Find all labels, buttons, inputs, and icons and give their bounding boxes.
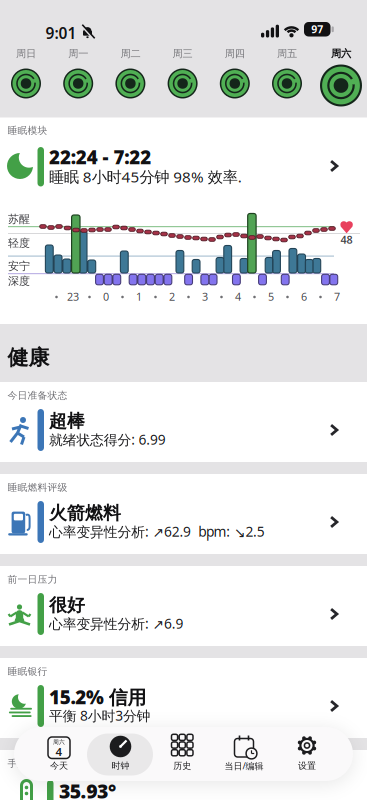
staticText: 48 [340, 231, 352, 248]
button[interactable]: 当日/编辑 [0, 0, 367, 800]
button[interactable]: 超棒 [0, 0, 367, 800]
staticText: 6 [301, 288, 307, 305]
staticText: 当日/编辑 [224, 758, 263, 773]
staticText: 手腕温度 [7, 756, 47, 771]
button[interactable]: 周四 [0, 0, 367, 800]
staticText: 周五 [277, 46, 297, 61]
staticText: 前一日压力 [7, 572, 57, 587]
staticText: 3 [202, 288, 208, 305]
staticText: 睡眠模块 [7, 123, 47, 138]
staticText: 7 [334, 288, 340, 305]
staticText: 22:24 - 7:22 [49, 142, 151, 172]
button[interactable]: 时钟 [0, 0, 367, 800]
staticText: 超棒 [49, 408, 85, 434]
staticText: 4 [55, 742, 62, 761]
staticText: 睡眠燃料评级 [7, 480, 67, 495]
staticText: 9:01 [45, 20, 76, 45]
button[interactable]: 周六 [0, 0, 367, 800]
staticText: 0 [103, 288, 109, 305]
staticText: 4 [235, 288, 241, 305]
staticText: 周四 [225, 46, 245, 61]
staticText: 97 [311, 21, 323, 38]
staticText: 深度 [8, 273, 30, 289]
staticText: 5 [268, 288, 274, 305]
staticText: 苏醒 [8, 211, 30, 227]
button[interactable]: 周二 [0, 0, 367, 800]
staticText: 睡眠银行 [7, 664, 47, 679]
staticText: 很好 [49, 592, 85, 618]
button[interactable]: 周日 [0, 0, 367, 800]
button[interactable]: 很好 [0, 0, 367, 800]
staticText: 设置 [298, 759, 316, 773]
staticText: 2 [169, 288, 175, 305]
staticText: 周二 [120, 46, 140, 61]
button[interactable]: 周六 [0, 0, 367, 800]
staticText: 周六 [53, 738, 65, 746]
button[interactable]: 22:24 - 7:22 [0, 0, 367, 800]
staticText: 心率变异性分析: ↗62.9 bpm: ↘2.5 [49, 520, 265, 543]
staticText: 时钟 [111, 759, 129, 773]
button[interactable]: 周一 [0, 0, 367, 800]
button[interactable]: 火箭燃料 [0, 0, 367, 800]
button[interactable]: 周三 [0, 0, 367, 800]
button[interactable]: 15.2% 信用 [0, 0, 367, 800]
staticText: 火箭燃料 [49, 500, 121, 526]
staticText: 35.93° [59, 775, 116, 800]
staticText: 1 [136, 288, 142, 305]
staticText: 今天 [50, 759, 68, 773]
staticText: 轻度 [8, 235, 30, 251]
staticText: 心率变异性分析: ↗6.9 [49, 612, 183, 635]
button[interactable]: 设置 [0, 0, 367, 800]
staticText: 就绪状态得分: 6.99 [49, 428, 166, 451]
staticText: 周六 [331, 46, 351, 61]
staticText: 23 [67, 288, 79, 305]
staticText: 今日准备状态 [7, 388, 67, 403]
staticText: 15.2% 信用 [49, 682, 146, 712]
staticText: 健康 [7, 342, 49, 373]
button[interactable]: 周五 [0, 0, 367, 800]
staticText: 历史 [173, 759, 191, 773]
button[interactable]: 历史 [0, 0, 367, 800]
staticText: 睡眠 8小时45分钟 98% 效率. [49, 164, 242, 189]
staticText: 周日 [16, 46, 36, 61]
staticText: 周三 [173, 46, 193, 61]
staticText: 周一 [68, 46, 88, 61]
staticText: 安宁 [8, 258, 30, 274]
staticText: 平衡 8小时3分钟 [49, 704, 151, 727]
